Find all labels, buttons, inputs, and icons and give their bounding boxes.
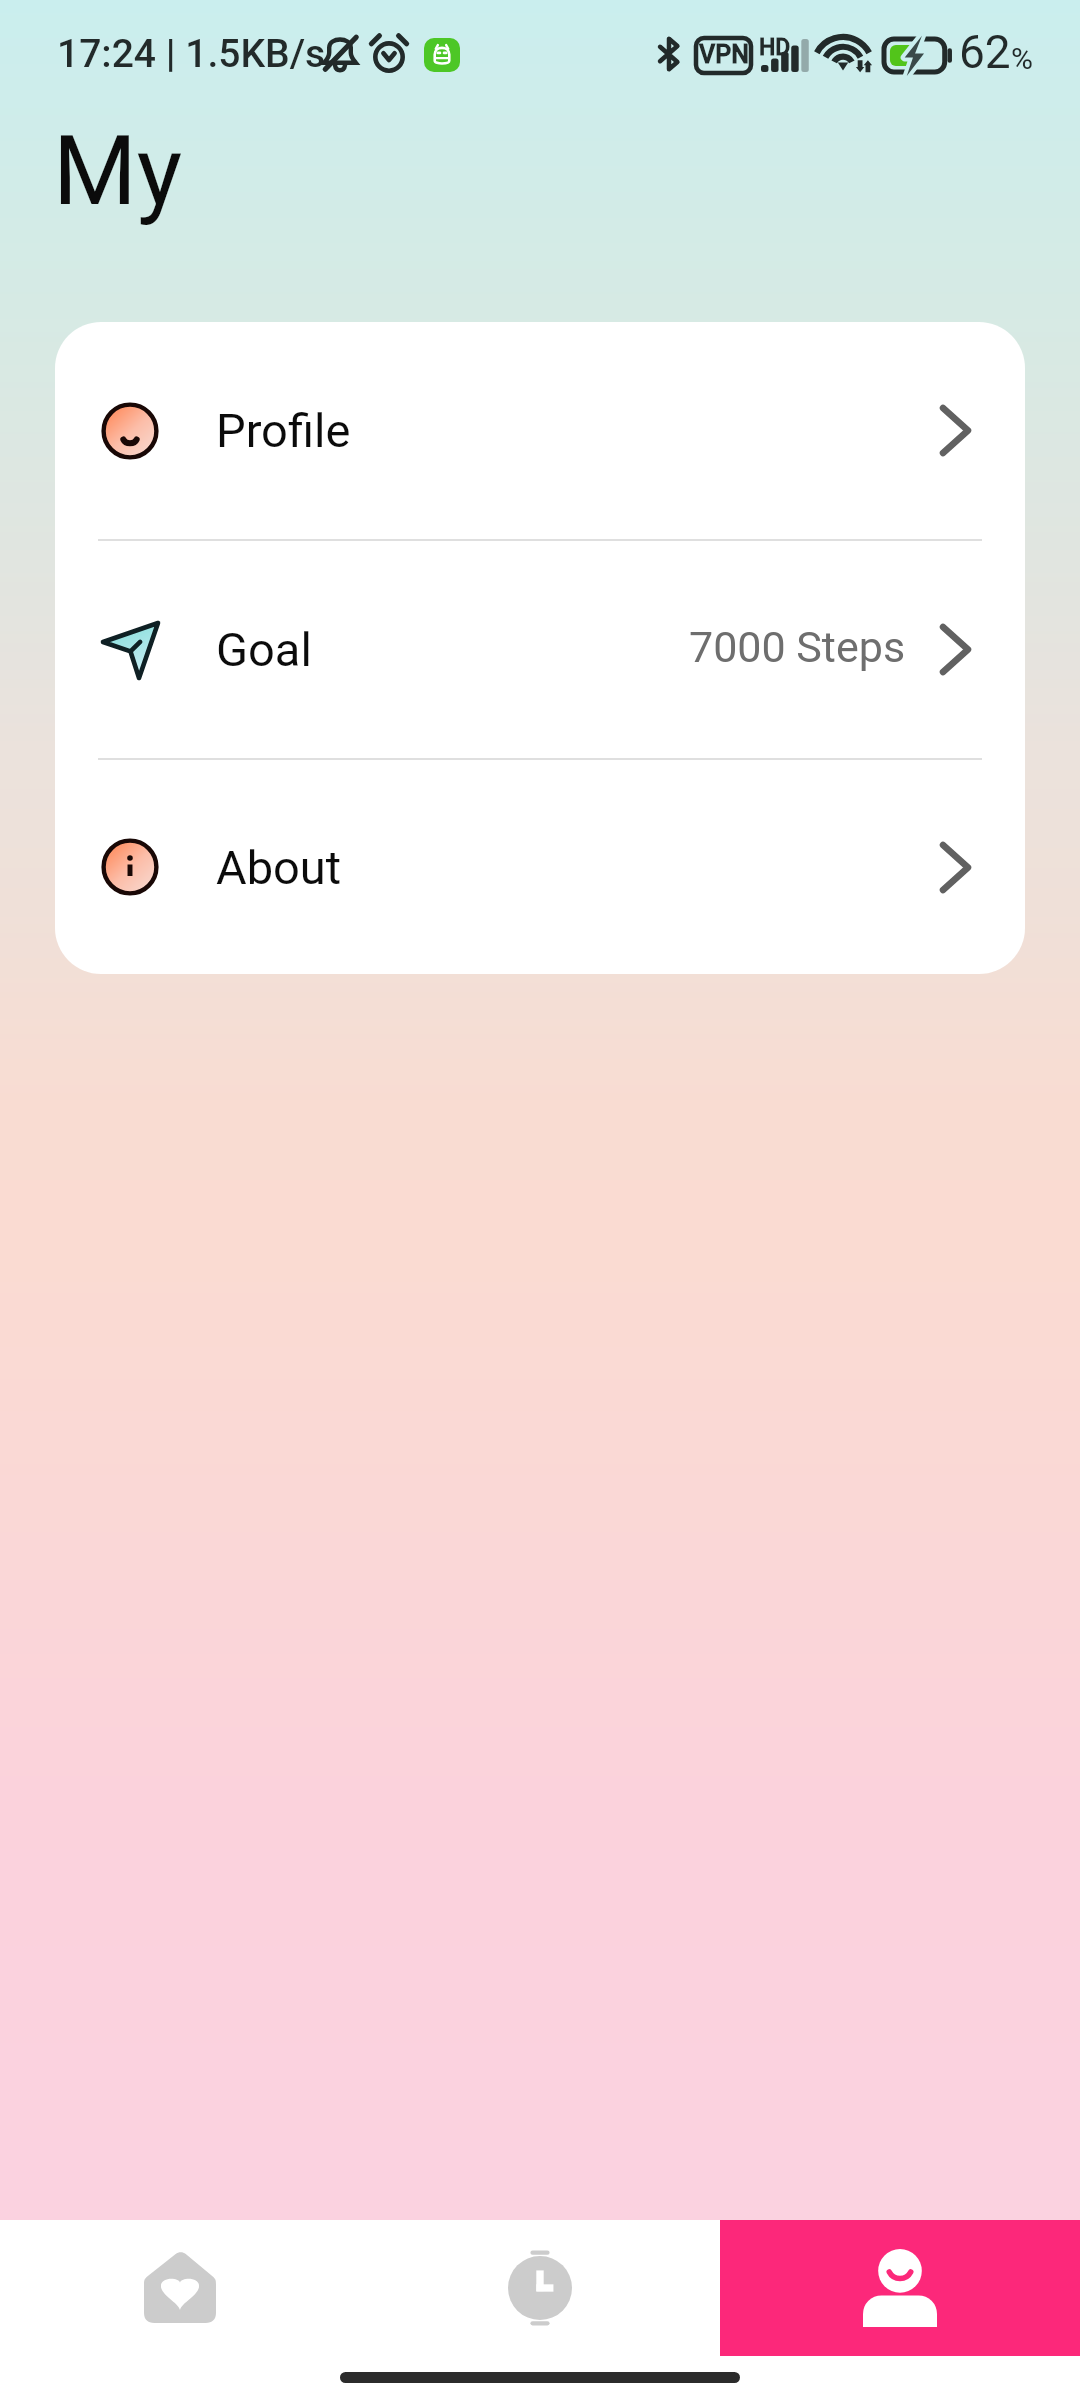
- button[interactable]: Goal: [55, 541, 1025, 758]
- button[interactable]: Profile: [720, 2220, 1080, 2356]
- staticText: About: [216, 840, 342, 895]
- button[interactable]: Profile: [55, 322, 1025, 539]
- staticText: 7000 Steps: [689, 622, 906, 672]
- button[interactable]: History: [360, 2220, 720, 2356]
- staticText: Goal: [216, 622, 312, 677]
- staticText: 62: [959, 25, 1011, 79]
- button[interactable]: Home: [0, 2220, 360, 2356]
- staticText: 17:24 | 1.5KB/s: [57, 31, 326, 77]
- staticText: HD: [759, 34, 791, 61]
- staticText: Profile: [216, 403, 351, 458]
- button[interactable]: About: [55, 760, 1025, 974]
- staticText: %: [1011, 41, 1033, 76]
- staticText: My: [53, 115, 183, 228]
- staticText: VPN: [699, 40, 749, 69]
